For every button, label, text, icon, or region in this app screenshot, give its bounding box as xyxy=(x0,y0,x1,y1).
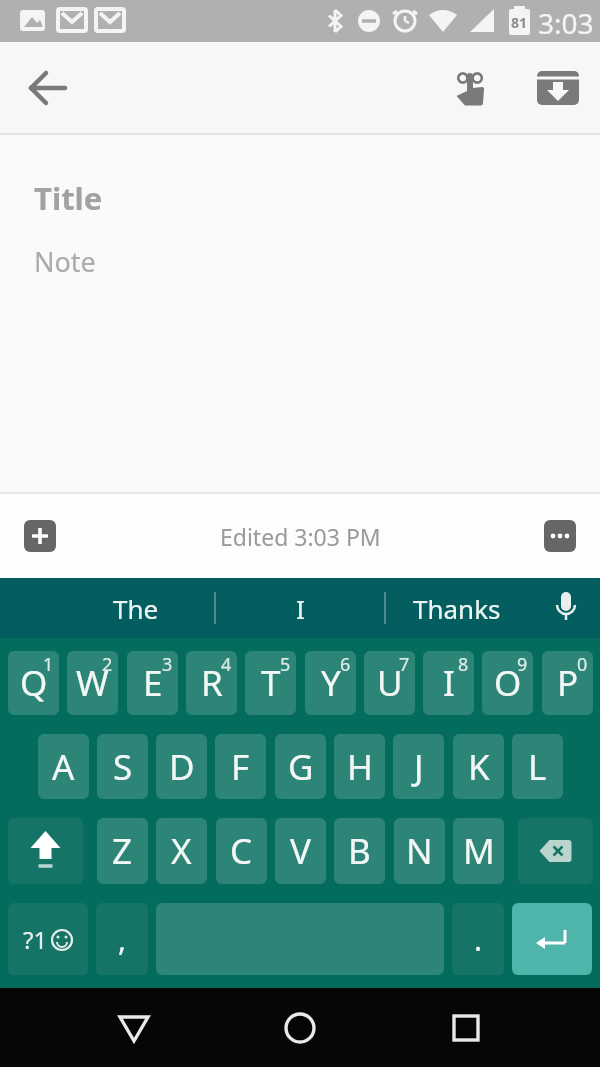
staticText: W xyxy=(76,659,109,707)
staticText: Q xyxy=(20,659,48,707)
button[interactable] xyxy=(518,818,593,884)
button[interactable] xyxy=(544,520,576,552)
staticText: Z xyxy=(112,827,133,875)
staticText: 5 xyxy=(280,652,291,677)
button[interactable]: I xyxy=(296,591,305,626)
staticText: , xyxy=(118,919,127,960)
button[interactable]: L xyxy=(512,734,563,799)
staticText: 2 xyxy=(102,652,113,677)
button[interactable] xyxy=(274,1002,326,1054)
button[interactable]: A xyxy=(38,734,89,799)
button[interactable]: D xyxy=(156,734,207,799)
button[interactable] xyxy=(8,818,83,884)
button[interactable]: W xyxy=(67,651,118,715)
staticText: C xyxy=(230,827,253,875)
staticText: G xyxy=(288,743,314,791)
button[interactable]: C xyxy=(216,818,267,884)
button[interactable]: E xyxy=(127,651,178,715)
staticText: 7 xyxy=(399,652,410,677)
staticText: . xyxy=(474,919,483,960)
staticText: 3 xyxy=(162,652,173,677)
button[interactable]: X xyxy=(156,818,207,884)
staticText: V xyxy=(290,827,312,875)
button[interactable]: Q xyxy=(8,651,59,715)
button[interactable]: K xyxy=(453,734,504,799)
button[interactable]: Y xyxy=(305,651,356,715)
button[interactable]: Z xyxy=(97,818,148,884)
button[interactable]: The xyxy=(113,591,159,626)
button[interactable]: , xyxy=(96,903,148,975)
button[interactable]: S xyxy=(97,734,148,799)
staticText: L xyxy=(528,743,547,791)
staticText: P xyxy=(557,659,579,707)
staticText: Note xyxy=(34,243,96,280)
button[interactable]: U xyxy=(364,651,415,715)
button[interactable]: H xyxy=(334,734,385,799)
staticText: 81 xyxy=(511,13,528,32)
staticText: 0 xyxy=(577,652,588,677)
button[interactable]: J xyxy=(393,734,444,799)
button[interactable] xyxy=(24,520,56,552)
staticText: J xyxy=(414,743,424,791)
button[interactable]: M xyxy=(453,818,504,884)
staticText: Title xyxy=(34,177,103,219)
staticText: 6 xyxy=(340,652,351,677)
button[interactable] xyxy=(446,64,494,112)
staticText: Edited 3:03 PM xyxy=(220,521,381,552)
button[interactable]: O xyxy=(482,651,533,715)
button[interactable]: N xyxy=(394,818,445,884)
button[interactable]: ?1 xyxy=(8,903,88,975)
staticText: T xyxy=(261,659,281,707)
staticText: 8 xyxy=(458,652,469,677)
staticText: R xyxy=(201,659,223,707)
staticText: ?1 xyxy=(23,923,48,956)
staticText: A xyxy=(52,743,75,791)
staticText: 3:03 xyxy=(538,4,594,42)
button[interactable]: V xyxy=(275,818,326,884)
staticText: N xyxy=(406,827,433,875)
staticText: F xyxy=(231,743,250,791)
staticText: U xyxy=(377,659,403,707)
button[interactable] xyxy=(534,64,582,112)
staticText: D xyxy=(169,743,195,791)
staticText: 4 xyxy=(221,652,232,677)
button[interactable]: F xyxy=(215,734,266,799)
button[interactable]: I xyxy=(423,651,474,715)
staticText: 1 xyxy=(43,652,54,677)
button[interactable] xyxy=(108,1002,160,1054)
staticText: I xyxy=(443,659,455,707)
button[interactable]: . xyxy=(452,903,504,975)
staticText: S xyxy=(113,743,133,791)
staticText: O xyxy=(494,659,522,707)
staticText: K xyxy=(468,743,490,791)
button[interactable]: R xyxy=(186,651,237,715)
staticText: Y xyxy=(321,659,341,707)
staticText: X xyxy=(171,827,192,875)
button[interactable]: P xyxy=(542,651,593,715)
staticText: H xyxy=(347,743,373,791)
button[interactable]: G xyxy=(275,734,326,799)
staticText: B xyxy=(348,827,371,875)
staticText: 9 xyxy=(517,652,528,677)
button[interactable] xyxy=(24,64,72,112)
button[interactable] xyxy=(440,1002,492,1054)
button[interactable]: B xyxy=(334,818,385,884)
button[interactable]: Thanks xyxy=(413,591,501,626)
button[interactable] xyxy=(512,903,592,975)
button[interactable]: T xyxy=(245,651,296,715)
staticText: E xyxy=(143,659,163,707)
staticText: M xyxy=(463,827,495,875)
